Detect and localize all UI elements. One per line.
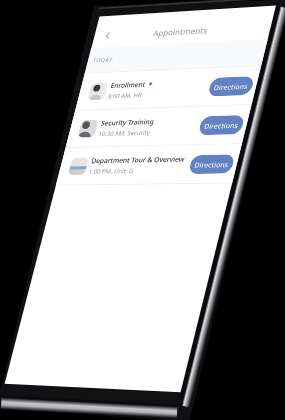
button[interactable]: Security Training	[0, 110, 200, 152]
button[interactable]: Department Tour & Overview	[0, 153, 200, 195]
button[interactable]: Directions	[149, 78, 196, 99]
button[interactable]: Directions	[149, 121, 196, 142]
staticText: Security Training	[35, 120, 96, 130]
staticText: 8:00 AM, HR	[35, 90, 75, 99]
staticText: 1:00 PM, Unit: G	[35, 176, 87, 185]
button[interactable]: Enrollment	[0, 67, 200, 109]
staticText: Appointments	[69, 17, 131, 29]
staticText: Department Tour & Overview	[35, 163, 142, 173]
button[interactable]: Directions	[149, 164, 196, 185]
staticText: 10:30 AM, Security	[35, 133, 95, 142]
